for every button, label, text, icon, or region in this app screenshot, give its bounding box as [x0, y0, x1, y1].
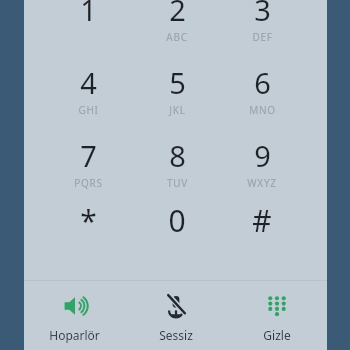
staticText: GHI	[78, 103, 99, 117]
button[interactable]: 1	[51, 0, 125, 50]
staticText: #	[252, 200, 272, 241]
staticText: 1	[80, 0, 97, 29]
staticText: TUV	[167, 176, 188, 190]
staticText: Sessiz	[159, 327, 193, 343]
button[interactable]: #	[225, 200, 299, 250]
button[interactable]: 5	[140, 63, 214, 123]
staticText: ABC	[166, 30, 188, 44]
staticText: DEF	[252, 30, 273, 44]
button[interactable]: 8	[140, 136, 214, 196]
staticText: Hoparlör	[49, 327, 100, 343]
button[interactable]: Sessiz	[125, 291, 226, 343]
staticText: 9	[254, 136, 271, 175]
staticText: 4	[80, 63, 97, 102]
staticText: Gizle	[263, 327, 291, 343]
staticText: WXYZ	[247, 176, 277, 190]
staticText: 6	[254, 63, 271, 102]
staticText: MNO	[249, 103, 276, 117]
button[interactable]: *	[51, 200, 125, 250]
button[interactable]: 4	[51, 63, 125, 123]
button[interactable]: 0	[140, 200, 214, 250]
staticText: PQRS	[74, 176, 103, 190]
button[interactable]: Hoparlör	[24, 291, 125, 343]
button[interactable]: Gizle	[226, 291, 327, 343]
button[interactable]: 7	[51, 136, 125, 196]
staticText: 0	[168, 200, 186, 241]
staticText: JKL	[169, 103, 186, 117]
button[interactable]: 3	[225, 0, 299, 50]
button[interactable]: 9	[225, 136, 299, 196]
button[interactable]: 2	[140, 0, 214, 50]
staticText: 5	[169, 63, 186, 102]
staticText: 3	[254, 0, 271, 29]
button[interactable]: 6	[225, 63, 299, 123]
staticText: 2	[169, 0, 186, 29]
staticText: *	[80, 200, 97, 241]
staticText: 7	[80, 136, 97, 175]
staticText: 8	[169, 136, 186, 175]
